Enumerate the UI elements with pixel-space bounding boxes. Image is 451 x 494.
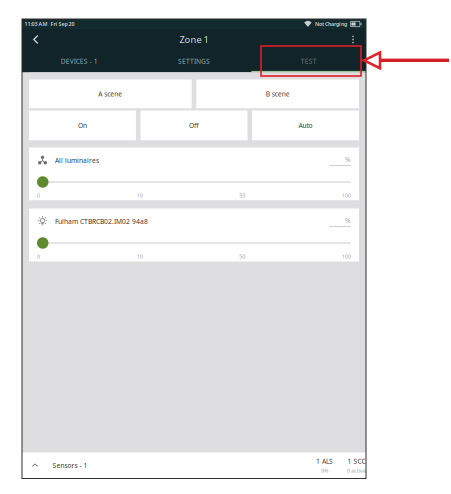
staticText: Sensors - 1	[52, 461, 87, 470]
button[interactable]: B scene	[196, 79, 359, 108]
button[interactable]: DEVICES - 1	[22, 50, 137, 72]
staticText: %	[345, 155, 351, 164]
button[interactable]: Off	[140, 110, 247, 140]
staticText: 10	[137, 192, 143, 199]
staticText: 9%	[321, 467, 328, 474]
staticText: 50	[239, 192, 245, 199]
staticText: 0 active	[347, 467, 366, 474]
staticText: 100	[342, 192, 351, 199]
staticText: 100	[342, 253, 351, 260]
staticText: 11:03 AM Fri Sep 20	[24, 20, 74, 28]
staticText: 10	[137, 253, 143, 260]
button[interactable]: TEST	[251, 50, 366, 72]
staticText: Not Charging	[315, 20, 347, 28]
staticText: SETTINGS	[178, 57, 210, 66]
button[interactable]: Sensors - 1	[22, 452, 366, 478]
staticText: %	[345, 216, 351, 225]
button[interactable]: On	[29, 110, 136, 140]
staticText: All luminaires	[55, 156, 99, 165]
staticText: On	[78, 121, 87, 130]
staticText: DEVICES - 1	[61, 57, 98, 66]
staticText: 0	[37, 253, 40, 260]
staticText: 1 SCC	[347, 457, 365, 466]
button[interactable]: More options	[344, 28, 362, 50]
staticText: TEST	[301, 57, 317, 66]
staticText: Off	[189, 121, 199, 130]
button[interactable]: A scene	[29, 79, 192, 108]
staticText: 50	[239, 253, 245, 260]
staticText: B scene	[266, 90, 290, 98]
button[interactable]: SETTINGS	[137, 50, 251, 72]
button[interactable]: Back	[26, 28, 46, 50]
staticText: A scene	[98, 90, 122, 98]
staticText: 0	[37, 192, 40, 199]
staticText: Zone 1	[179, 33, 208, 46]
staticText: Fulham CTBRCB02.IM02 94a8	[55, 217, 148, 226]
staticText: Auto	[298, 121, 312, 130]
staticText: 1 ALS	[316, 457, 333, 466]
button[interactable]: Auto	[252, 110, 359, 140]
